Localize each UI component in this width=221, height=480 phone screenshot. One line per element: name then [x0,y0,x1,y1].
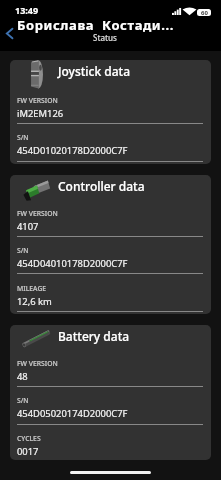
staticText: 12,6 km [17,295,52,308]
staticText: FW VERSION [17,209,58,218]
staticText: Controller data [58,178,145,194]
staticText: 454D01020178D2000C7F [17,144,128,157]
staticText: S/N [17,396,29,405]
staticText: 4107 [17,220,39,233]
staticText: FW VERSION [17,359,58,368]
button[interactable]: Battery data [10,325,211,460]
staticText: 0017 [17,445,39,458]
staticText: Battery data [58,328,130,344]
staticText: 454D05020174D2000C7F [17,407,128,420]
button[interactable]: Back [0,23,18,43]
staticText: S/N [17,133,29,142]
staticText: Joystick data [58,63,131,79]
staticText: S/N [17,246,29,255]
staticText: Борислава Костади... [17,16,174,34]
staticText: FW VERSION [17,96,58,105]
staticText: iM2EM126 [17,107,64,120]
staticText: CYCLES [17,434,41,443]
button[interactable]: Joystick data [10,60,211,164]
staticText: Status [93,32,118,43]
staticText: 60 [201,9,208,16]
button[interactable]: Controller data [10,175,211,314]
staticText: 48 [17,370,28,383]
staticText: 454D04010178D2000C7F [17,257,128,270]
staticText: MILEAGE [17,284,47,293]
staticText: 13:49 [15,4,39,16]
